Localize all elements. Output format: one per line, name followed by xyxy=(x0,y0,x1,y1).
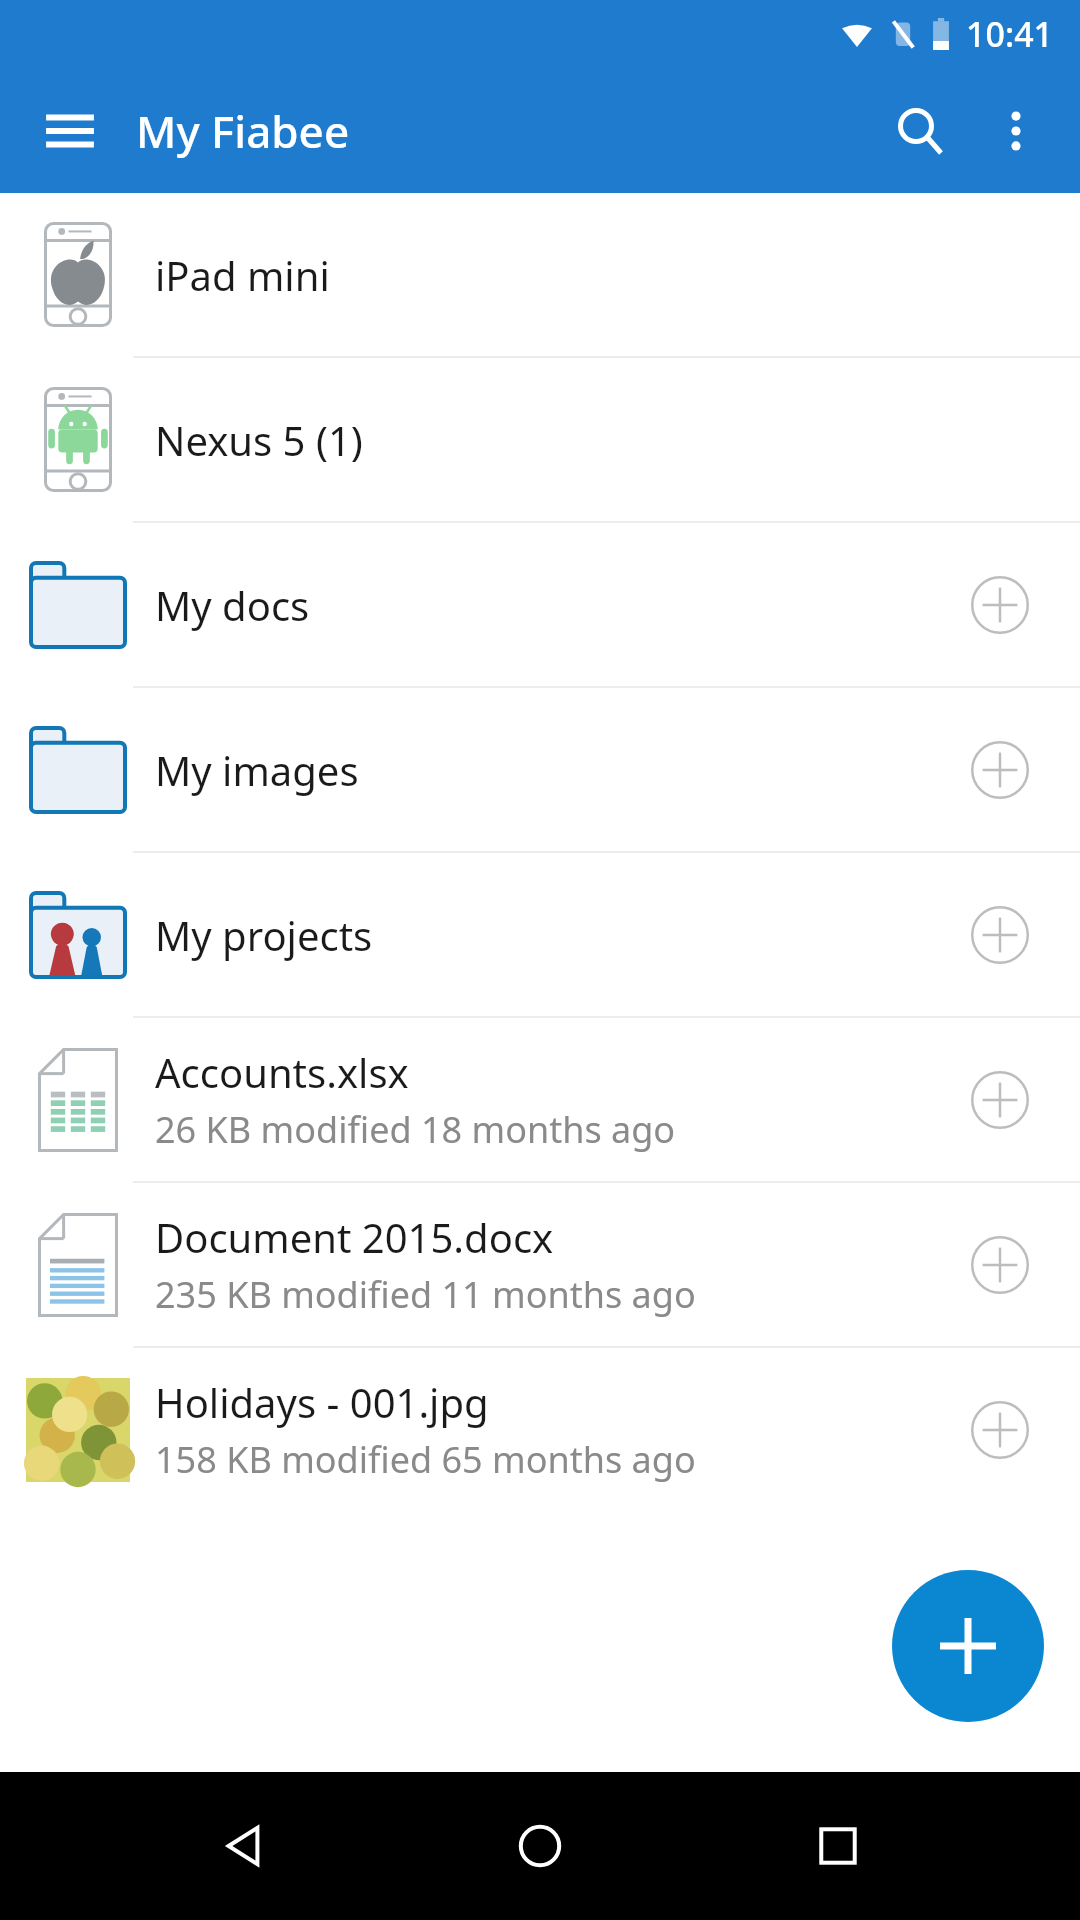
button[interactable]: More options xyxy=(968,83,1064,179)
button[interactable]: My projects xyxy=(0,853,1080,1016)
button[interactable]: Recent apps xyxy=(783,1791,893,1901)
staticText: My docs xyxy=(155,578,964,632)
button[interactable]: Back xyxy=(188,1791,298,1901)
button[interactable]: My images xyxy=(0,688,1080,851)
staticText: 235 KB modified 11 months ago xyxy=(155,1270,696,1319)
button[interactable]: Home xyxy=(485,1791,595,1901)
button[interactable]: Add to favourites xyxy=(964,1064,1036,1136)
button[interactable]: Add to favourites xyxy=(964,734,1036,806)
staticText: Accounts.xlsx xyxy=(155,1045,409,1099)
button[interactable]: Add xyxy=(892,1570,1044,1722)
button[interactable]: Menu xyxy=(26,87,114,175)
staticText: Holidays - 001.jpg xyxy=(155,1375,489,1429)
staticText: My Fiabee xyxy=(136,101,350,161)
staticText: 10:41 xyxy=(966,11,1054,57)
staticText: iPad mini xyxy=(155,248,330,302)
staticText: My images xyxy=(155,743,964,797)
staticText: My projects xyxy=(155,908,964,962)
button[interactable]: Search xyxy=(872,83,968,179)
button[interactable]: Holidays - 001.jpg xyxy=(0,1348,1080,1511)
button[interactable]: Add to favourites xyxy=(964,899,1036,971)
button[interactable]: iPad mini xyxy=(0,193,1080,356)
staticText: Nexus 5 (1) xyxy=(155,413,363,467)
button[interactable]: Add to favourites xyxy=(964,569,1036,641)
button[interactable]: Add to favourites xyxy=(964,1229,1036,1301)
button[interactable]: Nexus 5 (1) xyxy=(0,358,1080,521)
staticText: Document 2015.docx xyxy=(155,1210,554,1264)
button[interactable]: Add to favourites xyxy=(964,1394,1036,1466)
button[interactable]: My docs xyxy=(0,523,1080,686)
staticText: 158 KB modified 65 months ago xyxy=(155,1435,696,1484)
button[interactable]: Document 2015.docx xyxy=(0,1183,1080,1346)
staticText: 26 KB modified 18 months ago xyxy=(155,1105,676,1154)
button[interactable]: Accounts.xlsx xyxy=(0,1018,1080,1181)
